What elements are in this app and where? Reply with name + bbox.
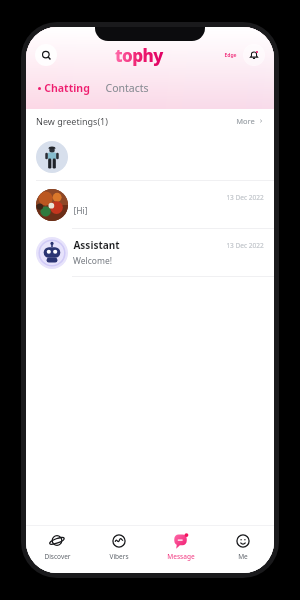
button[interactable]: Me <box>212 525 274 573</box>
button[interactable]: Notifications <box>243 44 265 66</box>
button[interactable]: Edge <box>222 51 239 60</box>
staticText: Discover <box>44 552 71 561</box>
button[interactable]: New greetings(1) <box>26 109 274 133</box>
button[interactable]: Message <box>150 525 212 573</box>
button[interactable]: Vibers <box>88 525 150 573</box>
button[interactable]: Search <box>35 44 57 66</box>
button[interactable]: Contacts <box>103 79 151 97</box>
staticText: Edge <box>224 52 237 59</box>
staticText: 13 Dec 2022 <box>226 241 264 250</box>
button[interactable]: Chatting <box>36 79 92 97</box>
staticText: More <box>236 116 255 126</box>
staticText: Welcome! <box>73 255 112 267</box>
button[interactable]: 13 Dec 2022 <box>26 181 274 228</box>
staticText: tophy <box>115 44 163 67</box>
staticText: Contacts <box>105 81 149 95</box>
button[interactable]: Assistant <box>26 229 274 276</box>
staticText: [Hi] <box>73 205 88 217</box>
button[interactable]: Discover <box>26 525 88 573</box>
staticText: Vibers <box>109 552 129 561</box>
button[interactable] <box>26 133 274 180</box>
staticText: Message <box>167 552 195 561</box>
staticText: Chatting <box>44 81 90 95</box>
staticText: New greetings(1) <box>36 115 108 127</box>
staticText: Assistant <box>73 238 120 252</box>
staticText: Me <box>238 552 248 561</box>
staticText: 13 Dec 2022 <box>226 193 264 202</box>
